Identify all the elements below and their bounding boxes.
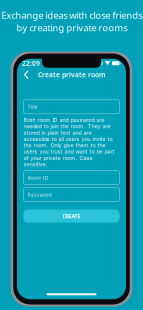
staticText: Both room ID and password are needed to … (23, 117, 114, 168)
button[interactable]: Back (21, 69, 32, 80)
staticText: Exchange ideas with close friends by cre… (1, 9, 142, 34)
staticText: 22:09 (22, 59, 40, 68)
button[interactable]: CREATE (23, 210, 119, 223)
staticText: Password (27, 191, 51, 198)
staticText: Room ID (27, 174, 48, 181)
staticText: CREATE (62, 212, 80, 220)
staticText: Title (27, 103, 37, 110)
staticText: Create private room (38, 70, 105, 79)
